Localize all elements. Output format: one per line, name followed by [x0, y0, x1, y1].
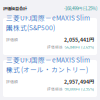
staticText: 評価額	[6, 79, 18, 84]
button[interactable]: 三菱UFJ国際－eMAXIS Slim 米	[3, 18, 97, 55]
staticText: 三菱UFJ国際－eMAXIS Slim 米	[6, 13, 90, 32]
staticText: 評価損益	[47, 44, 63, 50]
staticText: 評価損益合計	[3, 5, 27, 11]
button[interactable]: 三菱UFJ国際－eMAXIS Slim 全	[3, 60, 97, 97]
staticText: -56,840円 (-2.69%)	[64, 44, 94, 50]
staticText: 三菱UFJ国際－eMAXIS Slim 全	[6, 55, 90, 74]
staticText: 国株式(S&P500)	[6, 23, 55, 32]
button[interactable]: 評価損益合計	[0, 6, 100, 11]
staticText: -168,499円 (-1.25%)	[64, 5, 97, 12]
staticText: 評価損益	[47, 86, 63, 92]
staticText: 株式 (オール・カントリー)	[6, 65, 88, 74]
staticText: 2,055,441円	[64, 36, 94, 43]
staticText: 2,957,494円	[64, 78, 94, 85]
staticText: 評価額	[6, 37, 18, 42]
staticText: -90,000円 (-2.95%)	[64, 86, 94, 92]
